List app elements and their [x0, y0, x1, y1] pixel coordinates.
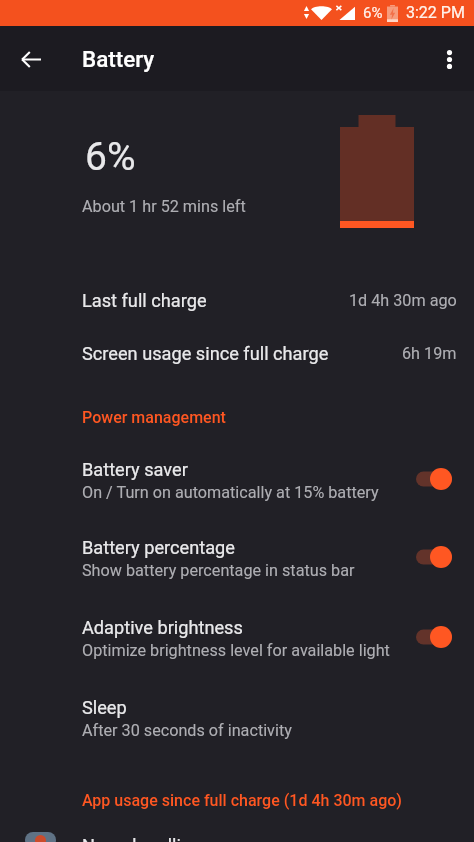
button[interactable]: Toggle Battery saver — [410, 463, 459, 495]
staticText: On / Turn on automatically at 15% batter… — [82, 483, 379, 502]
staticText: Optimize brightness level for available … — [82, 641, 390, 660]
button[interactable]: News headlines — [0, 826, 474, 842]
staticText: 6% — [85, 134, 136, 180]
button[interactable]: Battery saver — [0, 445, 474, 509]
staticText: News headlines — [82, 835, 210, 842]
staticText: Adaptive brightness — [82, 617, 243, 638]
staticText: Screen usage since full charge — [82, 343, 329, 364]
button[interactable]: More options — [436, 48, 462, 70]
staticText: 6h 19m — [402, 344, 457, 363]
button[interactable]: Screen usage since full charge — [0, 327, 474, 375]
staticText: Last full charge — [82, 290, 207, 311]
staticText: After 30 seconds of inactivity — [82, 721, 292, 740]
staticText: 3:22 PM — [406, 3, 465, 22]
button[interactable]: Navigate up — [9, 37, 53, 81]
button[interactable]: Toggle Battery percentage — [410, 541, 459, 573]
staticText: App usage since full charge (1d 4h 30m a… — [82, 791, 402, 810]
staticText: Sleep — [82, 697, 127, 718]
button[interactable]: Last full charge — [0, 274, 474, 322]
button[interactable]: Sleep — [0, 683, 474, 747]
staticText: 6% — [363, 4, 383, 22]
staticText: Battery percentage — [82, 537, 235, 558]
staticText: Battery saver — [82, 459, 188, 480]
button[interactable]: Adaptive brightness — [0, 603, 474, 667]
staticText: About 1 hr 52 mins left — [82, 197, 246, 216]
button[interactable]: Toggle Adaptive brightness — [410, 621, 459, 653]
staticText: Show battery percentage in status bar — [82, 561, 355, 580]
button[interactable]: Battery percentage — [0, 523, 474, 587]
staticText: Battery — [82, 46, 155, 72]
staticText: Power management — [82, 408, 226, 427]
staticText: 1d 4h 30m ago — [349, 291, 457, 310]
